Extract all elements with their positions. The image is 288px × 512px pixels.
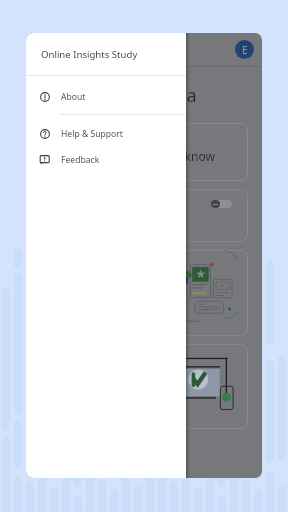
- button[interactable]: [211, 200, 232, 208]
- staticText: Online Insights Study: [41, 48, 138, 61]
- button[interactable]: About: [26, 84, 186, 110]
- button[interactable]: Feedback: [26, 147, 186, 173]
- staticText: Help & Support: [61, 128, 123, 140]
- button[interactable]: Help us learn what you know: [40, 123, 248, 181]
- button[interactable]: [40, 250, 248, 336]
- staticText: Hello there, Emma: [40, 83, 197, 108]
- staticText: About: [61, 91, 86, 103]
- button[interactable]: Account: [235, 40, 254, 59]
- staticText: Feedback: [61, 154, 100, 166]
- button[interactable]: [40, 344, 248, 429]
- staticText: Help us learn what you know: [52, 148, 215, 164]
- staticText: Survey: [40, 42, 75, 57]
- staticText: E: [242, 43, 248, 57]
- button[interactable]: [40, 189, 248, 242]
- button[interactable]: Help & Support: [26, 121, 186, 147]
